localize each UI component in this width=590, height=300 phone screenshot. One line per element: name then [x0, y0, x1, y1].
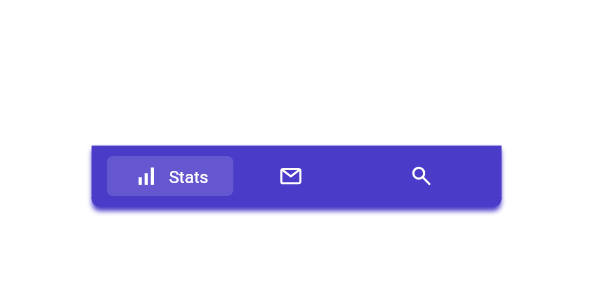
button[interactable]: Search [383, 156, 455, 196]
button[interactable]: Mail [255, 156, 327, 196]
button[interactable]: Stats [107, 156, 233, 196]
staticText: Stats [169, 167, 209, 187]
